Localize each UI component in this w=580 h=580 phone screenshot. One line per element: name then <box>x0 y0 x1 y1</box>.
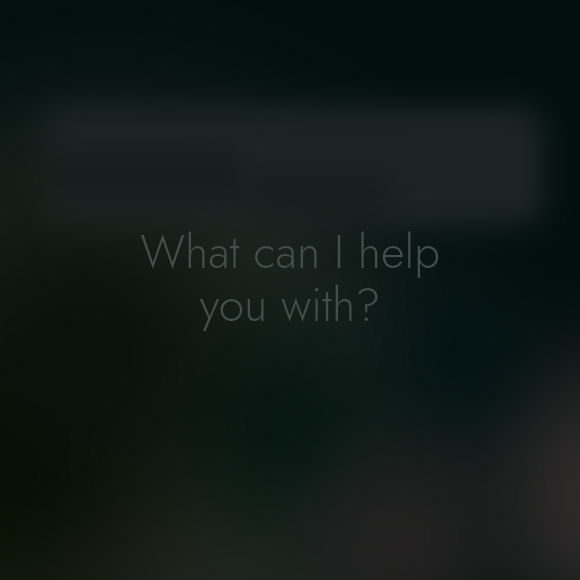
staticText: What can I help you with? <box>140 219 440 338</box>
